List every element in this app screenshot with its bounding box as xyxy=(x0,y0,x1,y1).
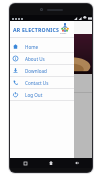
button[interactable]: Home xyxy=(10,41,74,52)
staticText: Contact Us xyxy=(25,80,49,86)
staticText: AR ELECTRONICS xyxy=(13,26,60,33)
button[interactable]: AR ELECTRONICS xyxy=(10,21,74,37)
button[interactable]: Home xyxy=(46,158,56,168)
button[interactable]: Log Out xyxy=(10,89,74,100)
staticText: Smart Group Ideas xyxy=(60,32,70,35)
button[interactable]: Download xyxy=(10,65,74,76)
staticText: Download xyxy=(25,68,47,74)
staticText: Log Out xyxy=(25,92,43,98)
staticText: Home xyxy=(25,44,39,50)
button[interactable]: About Us xyxy=(10,53,74,64)
staticText: About Us xyxy=(25,56,45,62)
button[interactable]: Recents xyxy=(20,158,30,168)
button[interactable]: Back xyxy=(72,158,82,168)
button[interactable]: Contact Us xyxy=(10,77,74,88)
